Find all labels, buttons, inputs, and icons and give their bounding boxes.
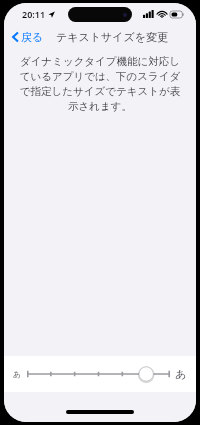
button[interactable]: 戻る	[4, 27, 50, 47]
staticText: テキストサイズを変更	[56, 30, 169, 44]
staticText: ダイナミックタイプ機能に対応しているアプリでは、下のスライダで指定したサイズでテ…	[18, 55, 182, 113]
staticText: あ	[13, 369, 22, 379]
button[interactable]: テキストサイズスライダ	[27, 363, 170, 385]
staticText: 戻る	[21, 30, 44, 44]
staticText: あ	[175, 367, 187, 381]
staticText: 20:11	[22, 8, 46, 20]
